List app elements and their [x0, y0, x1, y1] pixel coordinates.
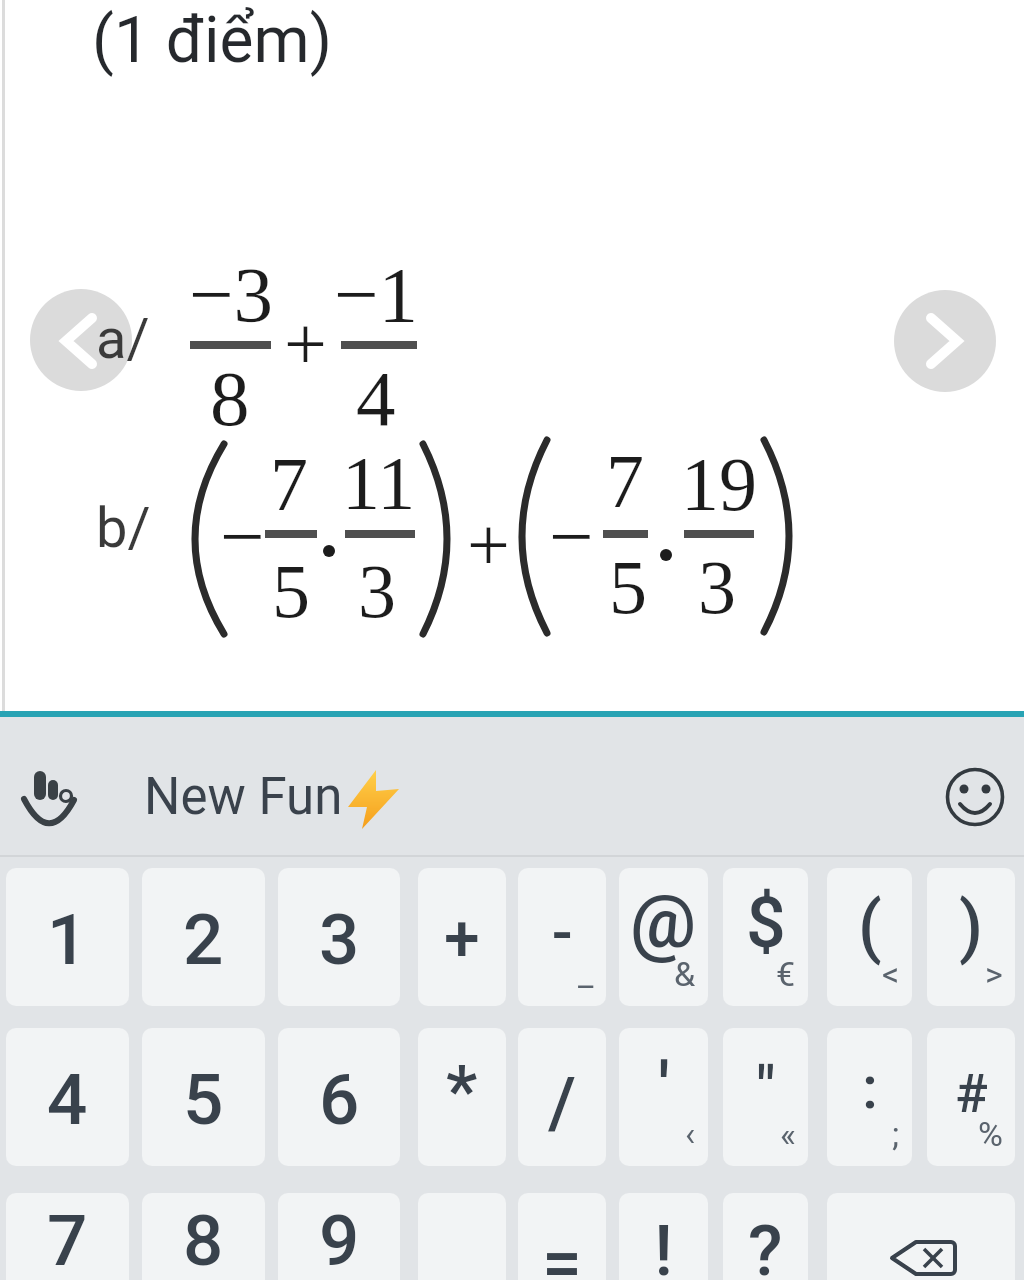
staticText: 5 [183, 1058, 224, 1141]
staticText: : [862, 1052, 878, 1122]
button[interactable] [945, 767, 1005, 827]
staticText: @ [630, 878, 697, 965]
staticText: 11 [342, 441, 416, 525]
staticText: ? [748, 1209, 783, 1280]
button[interactable]: 7 [6, 1193, 129, 1280]
staticText: − [220, 493, 265, 580]
staticText: > [985, 954, 1003, 994]
staticText: New Fun [144, 767, 343, 827]
button[interactable]: " [723, 1028, 808, 1166]
button[interactable]: @ [619, 868, 708, 1006]
staticText: 4 [47, 1058, 88, 1141]
staticText: ( [858, 887, 882, 967]
button[interactable]: 8 [142, 1193, 265, 1280]
button[interactable]: ) [927, 868, 1015, 1006]
staticText: ! [654, 1209, 674, 1280]
staticText: 3 [698, 545, 736, 629]
staticText: b/ [96, 495, 151, 561]
staticText: $ [746, 882, 786, 964]
staticText: 6 [319, 1058, 360, 1141]
button[interactable] [30, 289, 132, 391]
staticText: + [284, 301, 327, 385]
staticText: / [548, 1061, 577, 1144]
staticText: ' [658, 1046, 670, 1129]
staticText: −3 [189, 251, 274, 338]
staticText: + [444, 902, 480, 977]
staticText: % [978, 1114, 1003, 1154]
staticText: −1 [334, 251, 419, 338]
button[interactable]: $ [723, 868, 808, 1006]
staticText: - [552, 896, 573, 969]
staticText: 19 [681, 442, 757, 526]
staticText: € [776, 954, 796, 994]
button[interactable]: + [418, 868, 506, 1006]
staticText: 7 [606, 439, 644, 523]
button[interactable]: # [927, 1028, 1015, 1166]
button[interactable]: 6 [278, 1028, 400, 1166]
button[interactable]: : [827, 1028, 912, 1166]
staticText: # [955, 1062, 988, 1125]
button[interactable]: ' [619, 1028, 708, 1166]
staticText: < [882, 954, 900, 994]
staticText: & [674, 954, 696, 994]
staticText: ‹ [685, 1114, 696, 1154]
staticText: 5 [272, 549, 310, 633]
staticText: " [756, 1052, 776, 1122]
staticText: 8 [210, 355, 250, 442]
staticText: 7 [270, 442, 308, 526]
staticText: ; [892, 1114, 900, 1154]
button[interactable]: ! [619, 1193, 708, 1280]
button[interactable]: 4 [6, 1028, 129, 1166]
staticText: a/ [96, 306, 150, 372]
staticText: 7 [47, 1199, 88, 1280]
button[interactable]: 9 [278, 1193, 400, 1280]
button[interactable]: 5 [142, 1028, 265, 1166]
staticText: 9 [319, 1199, 360, 1280]
staticText: = [542, 1221, 582, 1280]
button[interactable]: ? [723, 1193, 808, 1280]
staticText: 3 [319, 898, 360, 981]
staticText: 4 [356, 355, 396, 442]
button[interactable]: / [518, 1028, 606, 1166]
staticText: 1 [47, 898, 88, 981]
button[interactable]: = [518, 1193, 606, 1280]
button[interactable] [20, 765, 82, 829]
button[interactable]: 3 [278, 868, 400, 1006]
staticText: − [549, 493, 594, 580]
staticText: + [467, 502, 510, 586]
staticText: ) [959, 887, 984, 967]
button[interactable]: 2 [142, 868, 265, 1006]
staticText: 3 [358, 549, 396, 633]
button[interactable]: 1 [6, 868, 129, 1006]
button[interactable]: ( [827, 868, 912, 1006]
button[interactable]: - [518, 868, 606, 1006]
staticText: 2 [183, 898, 224, 981]
button[interactable] [894, 290, 996, 392]
staticText: _ [578, 954, 594, 994]
staticText: (1 điểm) [92, 3, 332, 78]
staticText: « [780, 1114, 796, 1154]
staticText: * [446, 1049, 478, 1132]
staticText: 8 [183, 1199, 224, 1280]
staticText: 5 [609, 545, 647, 629]
button[interactable]: * [418, 1028, 506, 1166]
button[interactable] [827, 1193, 1015, 1280]
